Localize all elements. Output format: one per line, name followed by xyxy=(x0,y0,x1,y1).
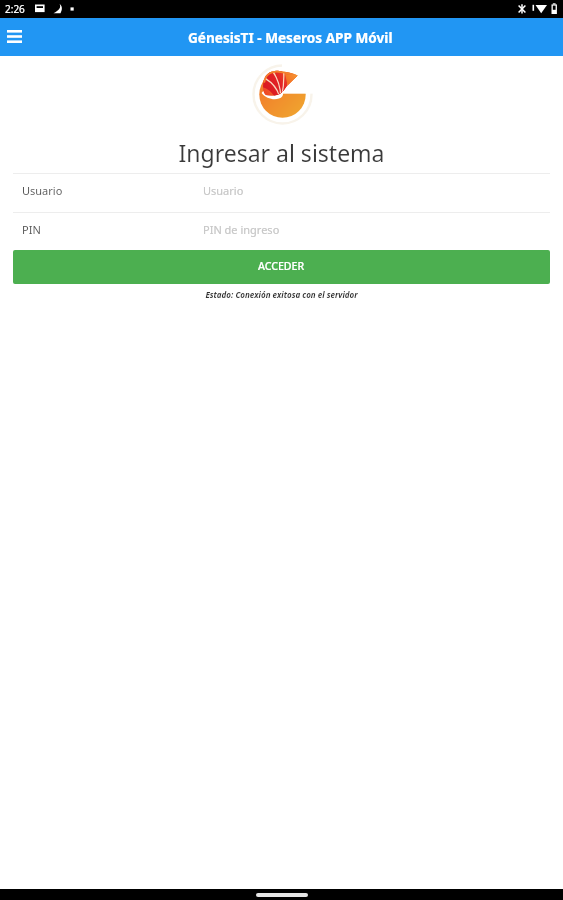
staticText: Estado: Conexión exitosa con el servidor xyxy=(0,289,563,300)
button[interactable]: PIN xyxy=(0,213,563,251)
staticText: PIN xyxy=(22,222,41,237)
staticText: 2:26 xyxy=(5,2,25,16)
button[interactable]: Menu xyxy=(1,24,27,50)
button[interactable]: Usuario xyxy=(0,174,563,212)
staticText: GénesisTI - Meseros APP Móvil xyxy=(188,28,393,47)
staticText: Usuario xyxy=(203,183,244,198)
staticText: Usuario xyxy=(22,183,63,198)
staticText: ACCEDER xyxy=(258,259,305,273)
staticText: Ingresar al sistema xyxy=(0,137,563,168)
button[interactable]: ACCEDER xyxy=(13,250,550,284)
staticText: PIN de ingreso xyxy=(203,222,280,237)
